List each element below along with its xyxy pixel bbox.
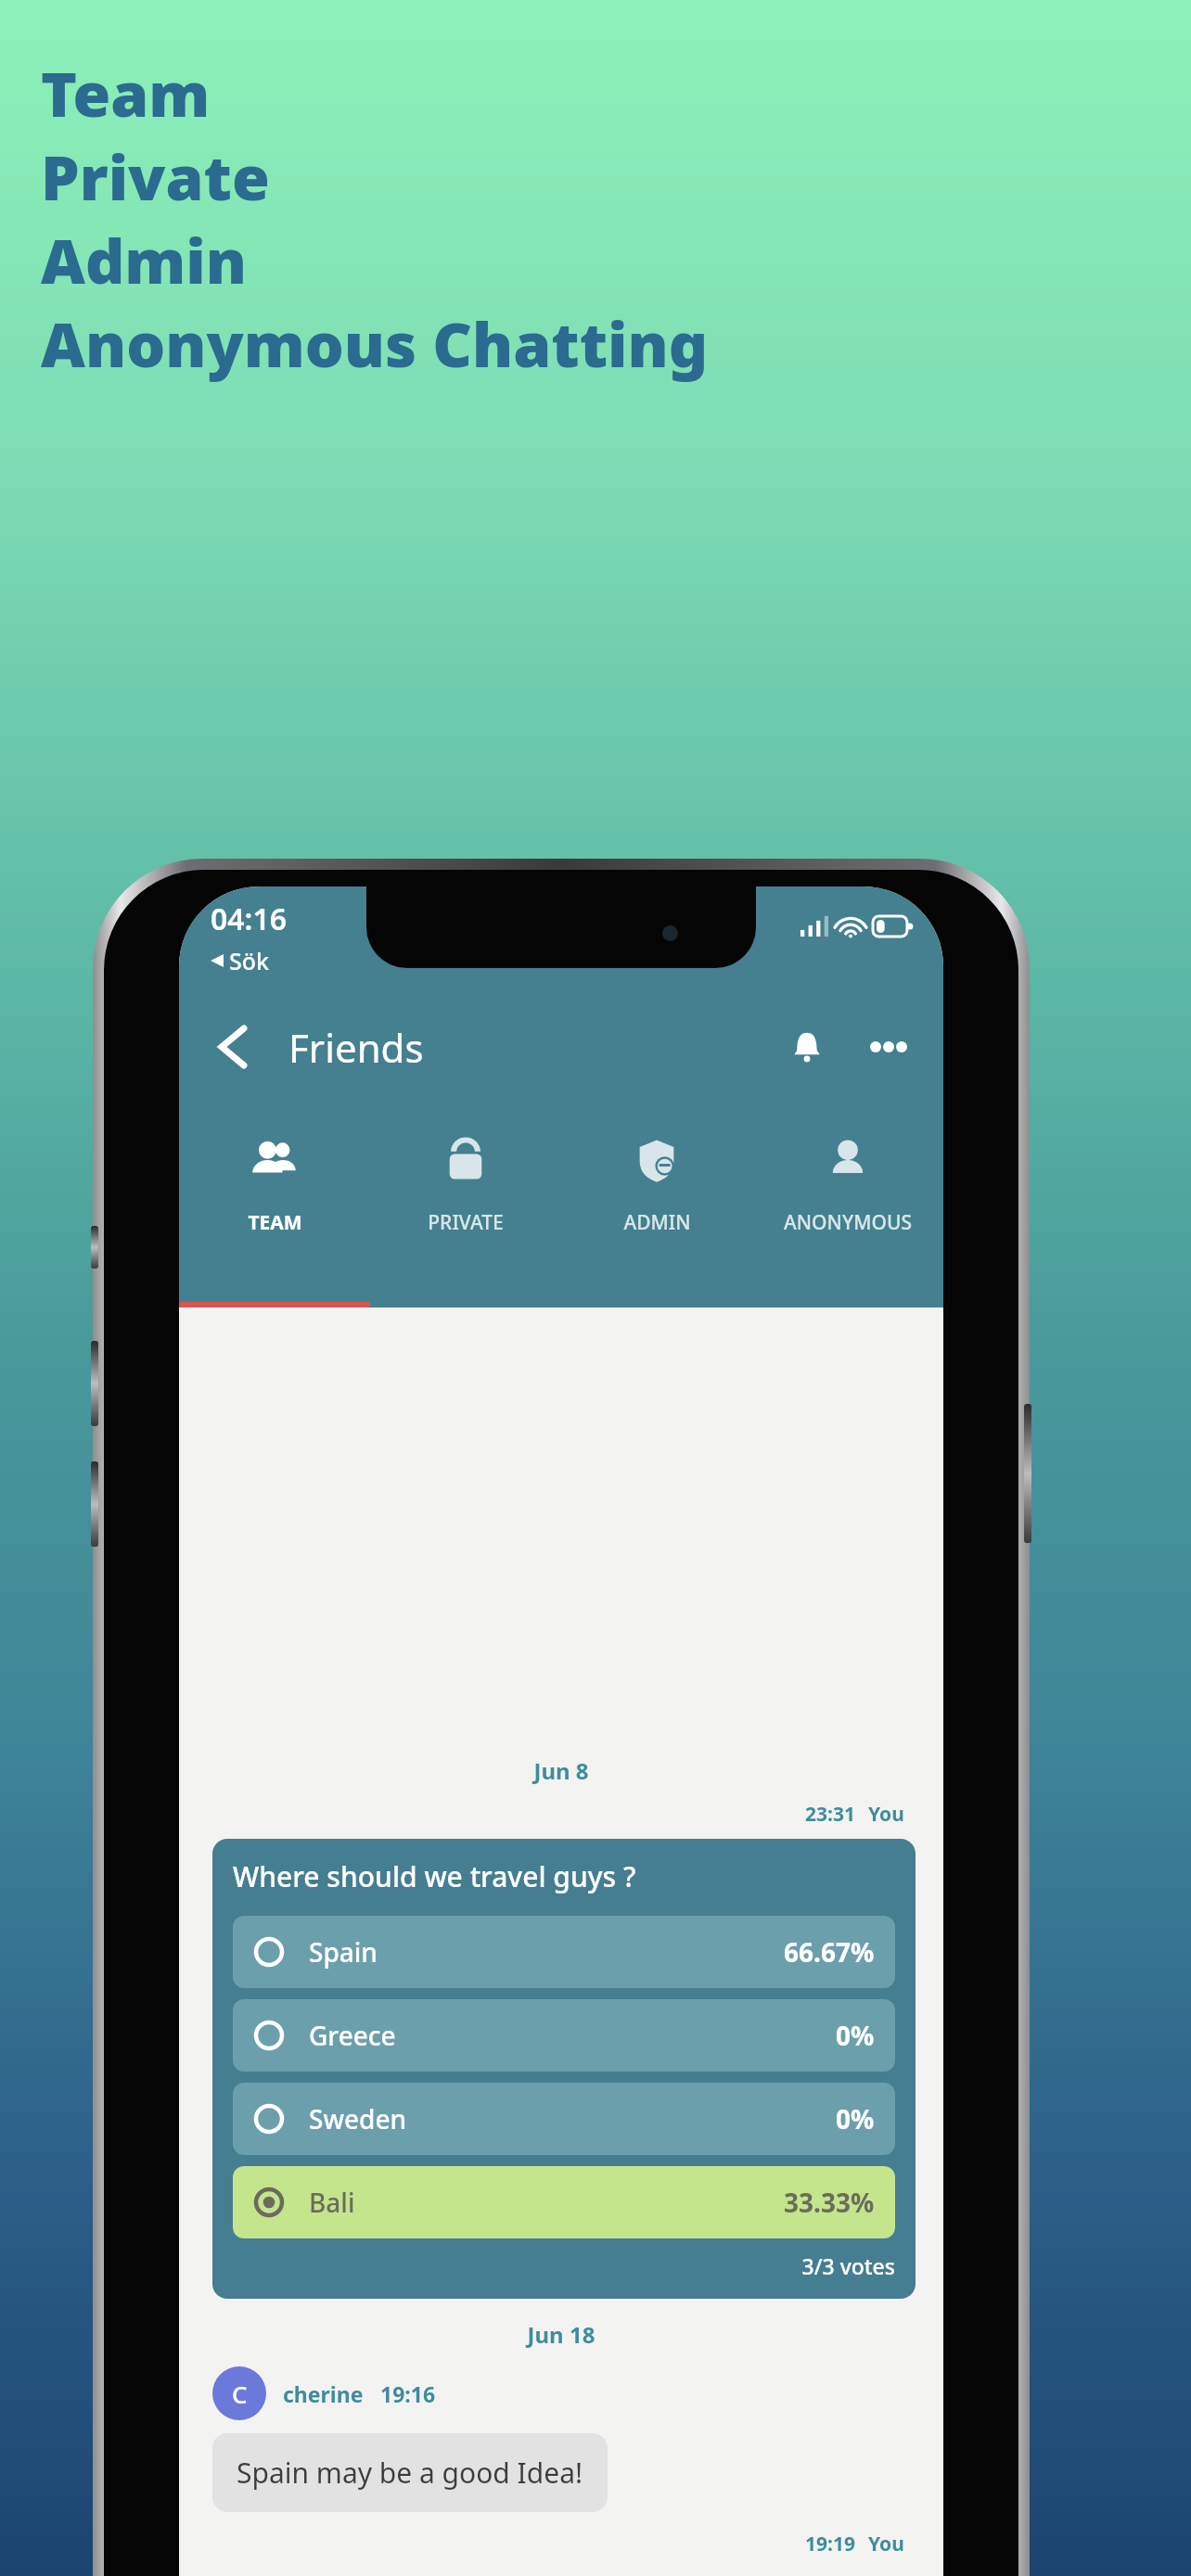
button[interactable]: Notifications: [778, 1018, 836, 1076]
staticText: TEAM: [248, 1209, 302, 1236]
button[interactable]: Back: [205, 1019, 261, 1075]
staticText: Jun 8: [179, 1755, 943, 1786]
button[interactable]: Where should we travel guys ?: [212, 1839, 916, 2299]
staticText: 0%: [836, 2018, 875, 2053]
staticText: Greece: [309, 2018, 396, 2053]
staticText: cherine: [283, 2379, 364, 2408]
staticText: Where should we travel guys ?: [233, 1857, 636, 1895]
staticText: 19:16: [380, 2379, 436, 2408]
button[interactable]: Spain may be a good Idea!: [212, 2433, 608, 2512]
staticText: 04:16: [211, 899, 288, 939]
staticText: You: [868, 2531, 904, 2557]
staticText: Spain may be a good Idea!: [237, 2454, 583, 2492]
staticText: 66.67%: [784, 1934, 875, 1970]
button[interactable]: Greece: [233, 1999, 895, 2072]
staticText: Anonymous Chatting: [41, 301, 709, 385]
staticText: Friends: [288, 1021, 424, 1074]
staticText: Spain: [309, 1934, 378, 1970]
button[interactable]: ANONYMOUS: [752, 1109, 943, 1307]
staticText: ADMIN: [623, 1209, 691, 1236]
staticText: 0%: [836, 2101, 875, 2136]
staticText: Bali: [309, 2185, 355, 2220]
staticText: C: [232, 2378, 248, 2410]
button[interactable]: TEAM: [179, 1109, 370, 1307]
staticText: Private: [41, 134, 270, 218]
staticText: 33.33%: [784, 2185, 875, 2220]
staticText: 19:19: [805, 2531, 855, 2557]
staticText: Sök: [229, 945, 270, 976]
staticText: You: [868, 1801, 904, 1828]
button[interactable]: Bali: [233, 2166, 895, 2238]
button[interactable]: More options: [860, 1018, 917, 1076]
button[interactable]: Sweden: [233, 2083, 895, 2155]
button[interactable]: Spain: [233, 1916, 895, 1988]
button[interactable]: ADMIN: [561, 1109, 752, 1307]
staticText: PRIVATE: [428, 1209, 504, 1236]
staticText: 23:31: [805, 1801, 855, 1828]
staticText: Admin: [41, 218, 248, 301]
staticText: Team: [41, 51, 211, 134]
staticText: Jun 18: [179, 2319, 943, 2350]
staticText: 3/3 votes: [233, 2251, 895, 2280]
staticText: Sweden: [309, 2101, 407, 2136]
button[interactable]: PRIVATE: [370, 1109, 561, 1307]
staticText: ANONYMOUS: [784, 1209, 912, 1236]
